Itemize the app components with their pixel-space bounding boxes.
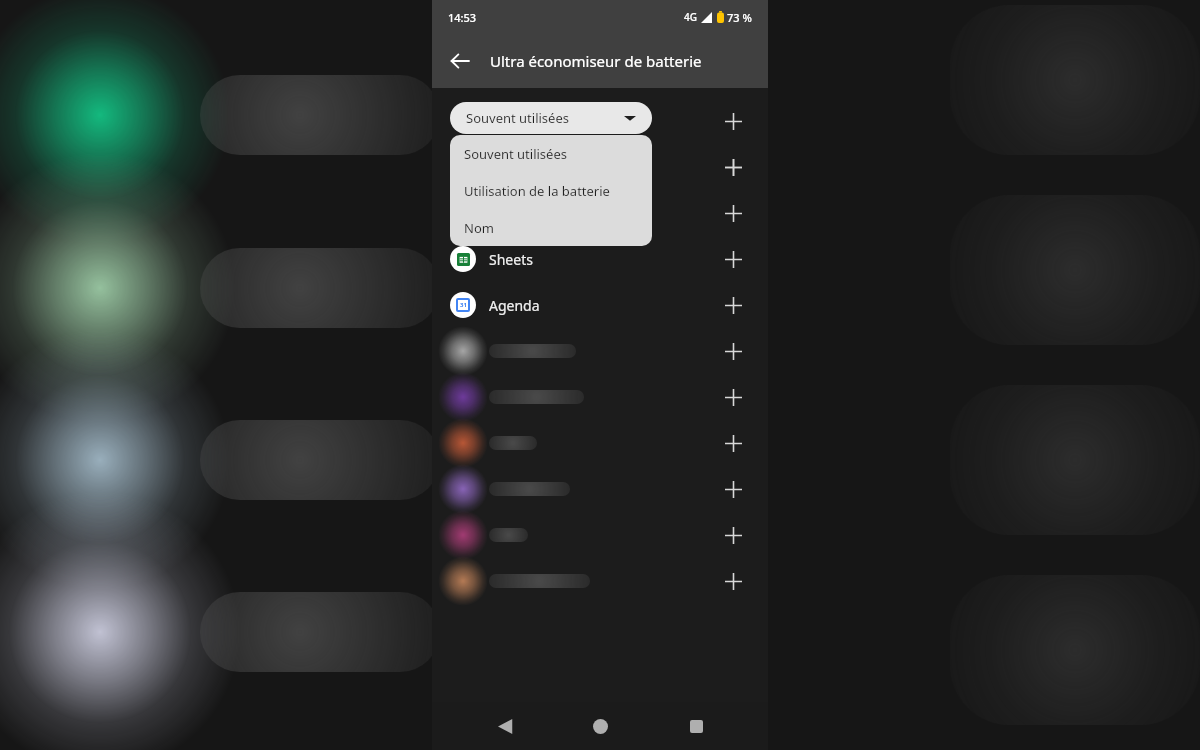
button[interactable]: Ajouter <box>714 470 752 508</box>
staticText: Google <box>489 158 537 177</box>
staticText: Utilisation de la batterie <box>464 182 610 200</box>
button[interactable]: Ajouter <box>432 558 768 604</box>
staticText: Nom <box>464 219 494 237</box>
button[interactable]: Ajouter <box>714 148 752 186</box>
staticText: 31 <box>460 301 467 309</box>
staticText: 4G <box>684 10 697 24</box>
button[interactable]: Souvent utilisées <box>450 102 652 134</box>
button[interactable]: Applications récentes <box>673 703 719 749</box>
button[interactable]: Ajouter <box>432 328 768 374</box>
button[interactable]: Ajouter <box>714 286 752 324</box>
button[interactable]: Ajouter <box>432 374 768 420</box>
button[interactable]: Retour <box>440 41 480 81</box>
button[interactable]: Ajouter <box>432 466 768 512</box>
button[interactable]: Ajouter <box>714 516 752 554</box>
staticText: Souvent utilisées <box>464 145 567 163</box>
button[interactable]: Ajouter <box>714 240 752 278</box>
button[interactable]: R=D <box>432 190 768 236</box>
button[interactable]: Sheets <box>432 236 768 282</box>
button[interactable]: Ajouter <box>714 194 752 232</box>
button[interactable]: Souvent utilisées <box>450 135 652 172</box>
button[interactable]: Google <box>432 144 768 190</box>
button[interactable]: Ajouter <box>714 562 752 600</box>
button[interactable]: Ajouter <box>714 332 752 370</box>
button[interactable]: Accueil <box>577 703 623 749</box>
staticText: Agenda <box>489 296 540 315</box>
button[interactable]: Ajouter <box>714 148 752 186</box>
button[interactable]: Ajouter <box>714 102 752 140</box>
button[interactable]: Ajouter <box>432 512 768 558</box>
button[interactable]: Retour <box>482 703 528 749</box>
staticText: 73 % <box>727 10 752 25</box>
staticText: 14:53 <box>448 10 477 25</box>
button[interactable]: Ajouter <box>714 424 752 462</box>
staticText: Souvent utilisées <box>466 109 569 127</box>
staticText: Ultra économiseur de batterie <box>490 51 702 71</box>
button[interactable]: Ajouter <box>432 420 768 466</box>
button[interactable]: Utilisation de la batterie <box>450 172 652 209</box>
button[interactable]: Nom <box>450 209 652 246</box>
button[interactable]: 31 <box>432 282 768 328</box>
button[interactable]: Ajouter <box>714 378 752 416</box>
staticText: Sheets <box>489 250 533 269</box>
